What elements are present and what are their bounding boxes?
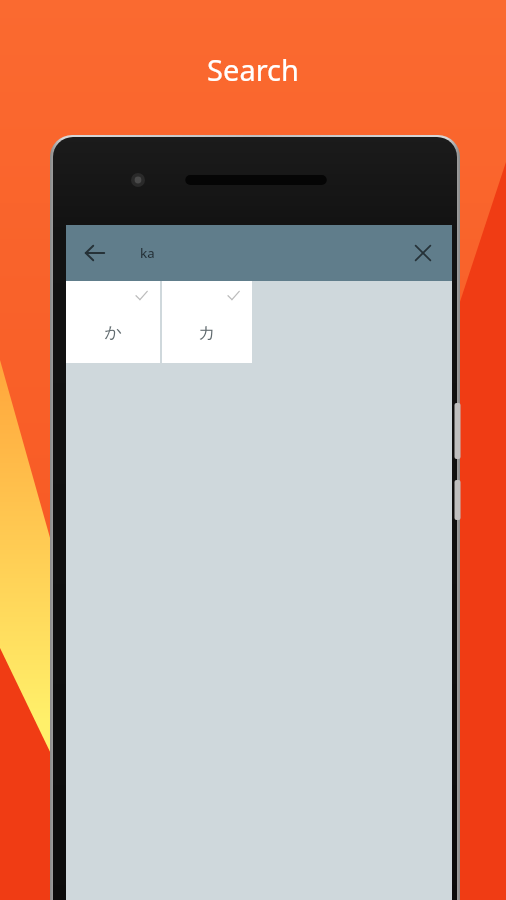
staticText: カ	[198, 322, 216, 343]
staticText: Search	[0, 50, 506, 89]
button[interactable]: ka	[140, 244, 398, 262]
button[interactable]: Back	[72, 230, 118, 276]
button[interactable]: カ	[162, 281, 252, 363]
button[interactable]: Clear search	[398, 228, 448, 278]
staticText: か	[104, 322, 122, 343]
staticText: ka	[140, 244, 155, 262]
button[interactable]: か	[66, 281, 160, 363]
